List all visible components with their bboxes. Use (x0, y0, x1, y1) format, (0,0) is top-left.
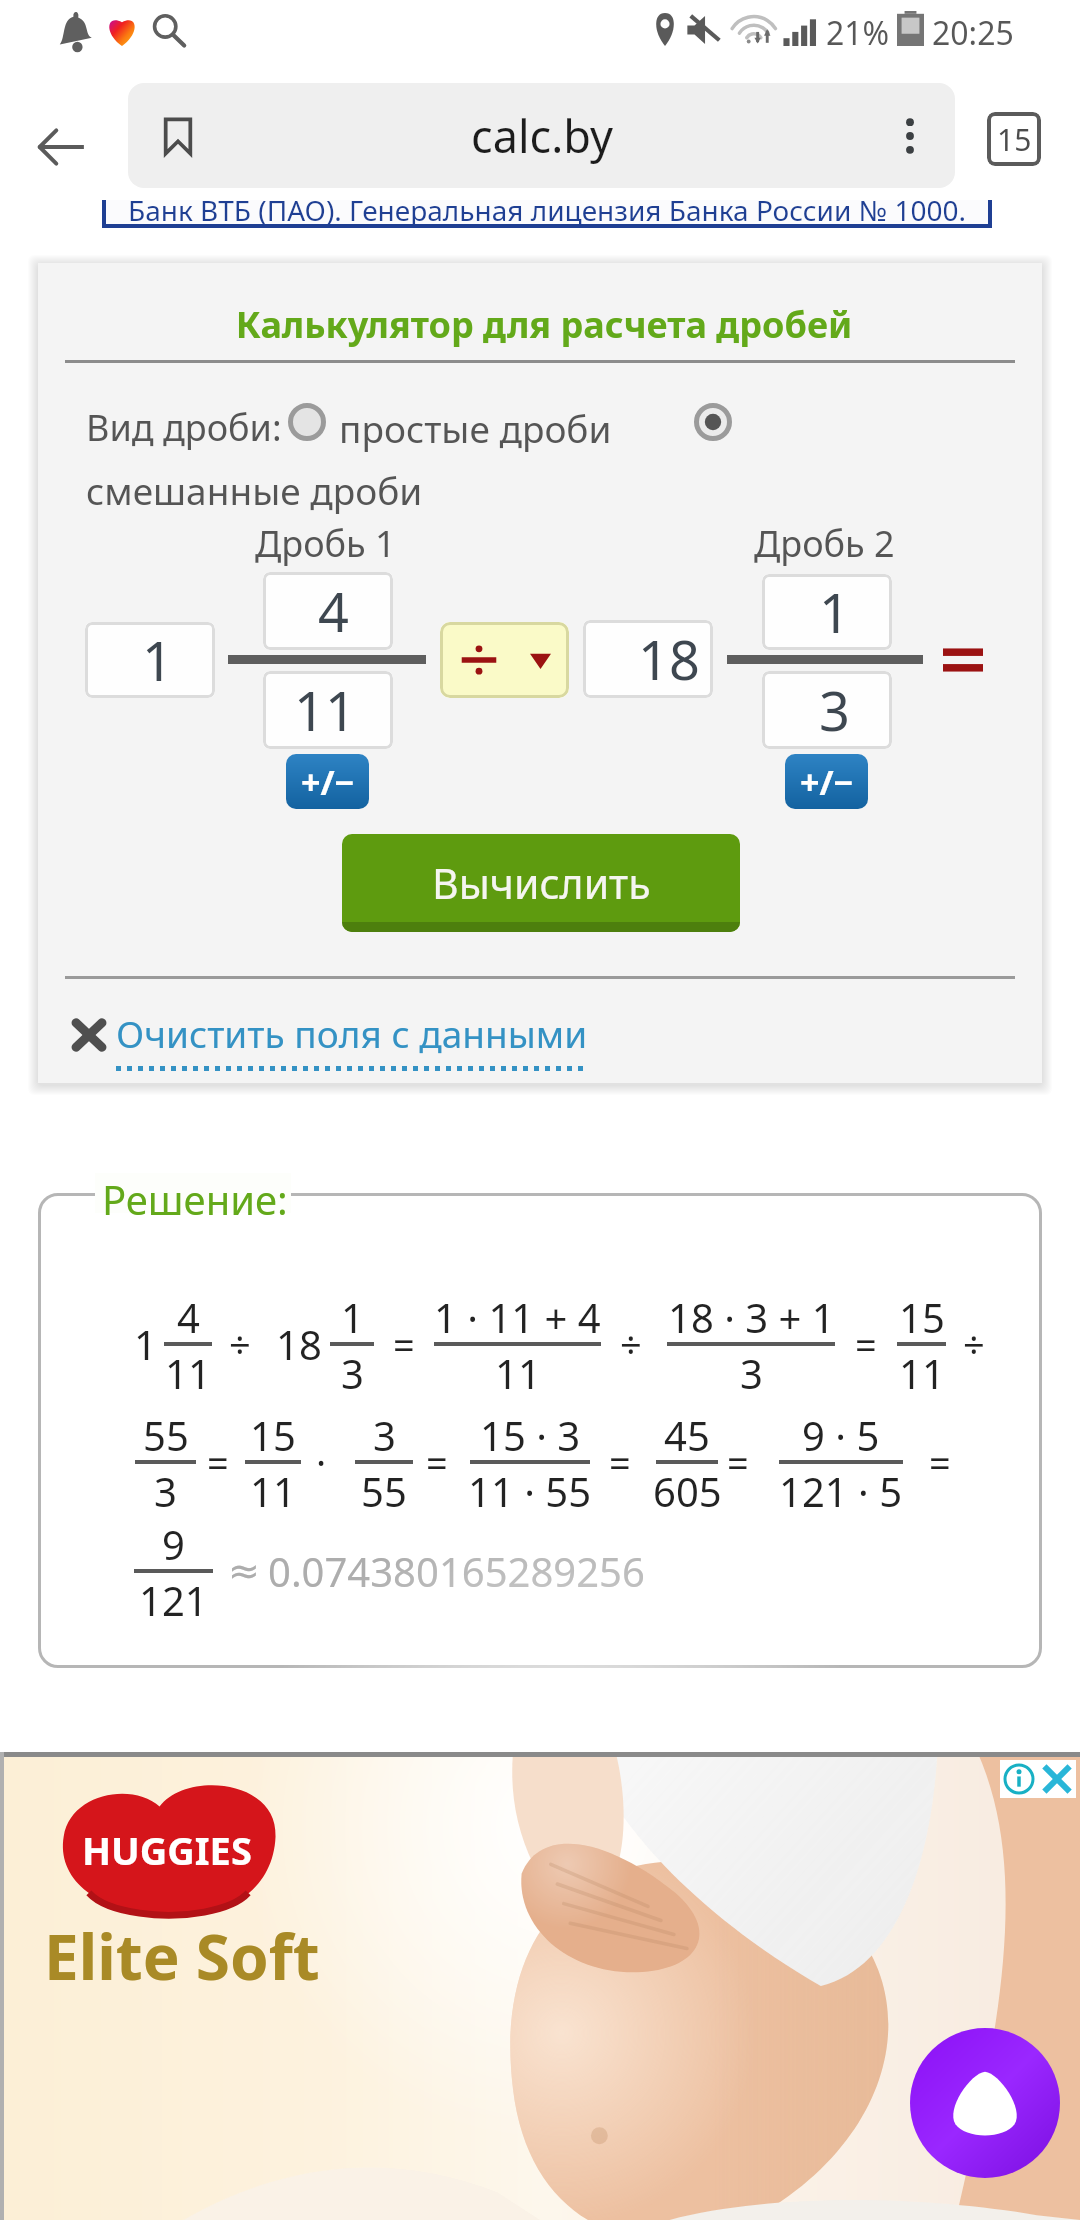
button[interactable]: 1 (762, 574, 892, 650)
staticText: = (426, 1436, 448, 1488)
staticText: 121 · 5 (779, 1464, 903, 1518)
staticText: 45 (664, 1408, 710, 1462)
staticText: 15 (899, 1290, 945, 1344)
staticText: Дробь 1 (255, 519, 396, 568)
button[interactable]: Assistant (910, 2028, 1060, 2178)
staticText: = (727, 1436, 749, 1488)
staticText: Решение: (102, 1172, 288, 1226)
staticText: 15 (997, 119, 1032, 160)
staticText: Вид дроби: (86, 403, 282, 452)
staticText: HUGGIES (82, 1824, 252, 1876)
button[interactable]: Tabs (983, 108, 1045, 170)
staticText: = (609, 1436, 631, 1488)
staticText: 4 (177, 1290, 200, 1344)
staticText: 0.074380165289256 (268, 1544, 645, 1598)
staticText: 3 (373, 1408, 396, 1462)
button[interactable]: Address bar (128, 83, 955, 188)
staticText: 605 (653, 1464, 722, 1518)
staticText: · (316, 1436, 327, 1488)
button[interactable]: Close ad (1038, 1760, 1076, 1798)
staticText: 11 (495, 1346, 541, 1400)
staticText: смешанные дроби (86, 465, 423, 515)
staticText: +/− (301, 759, 355, 805)
staticText: 18 (276, 1317, 322, 1371)
button[interactable]: Back (26, 112, 96, 182)
staticText: 1 (134, 1317, 157, 1371)
staticText: ≈ (228, 1549, 260, 1593)
button[interactable]: Huggies Elite Soft advertisement (0, 1752, 1080, 2220)
staticText: 11 · 55 (468, 1464, 592, 1518)
staticText: 9 (162, 1517, 185, 1571)
button[interactable]: 1 (85, 622, 215, 698)
button[interactable]: +/− (286, 754, 369, 809)
button[interactable]: 18 (583, 620, 713, 698)
staticText: 20:25 (932, 11, 1014, 55)
staticText: ÷ (963, 1318, 985, 1370)
staticText: 3 (341, 1346, 364, 1400)
staticText: = (207, 1436, 229, 1488)
staticText: 1 (142, 623, 173, 697)
staticText: 3 (740, 1346, 763, 1400)
button[interactable]: 11 (263, 671, 393, 749)
staticText: 15 (250, 1408, 296, 1462)
button[interactable]: Вычислить (342, 834, 740, 932)
button[interactable]: 4 (263, 572, 393, 650)
staticText: 121 (139, 1573, 208, 1627)
button[interactable]: Смешанные дроби (692, 401, 734, 443)
staticText: 3 (154, 1464, 177, 1518)
staticText: Дробь 2 (754, 519, 895, 568)
staticText: 9 · 5 (802, 1408, 880, 1462)
staticText: +/− (800, 759, 854, 805)
button[interactable]: Ad info (1000, 1760, 1038, 1798)
staticText: 55 (361, 1464, 407, 1518)
button[interactable]: Простые дроби (286, 401, 328, 443)
button[interactable]: More options (880, 106, 940, 166)
staticText: Вычислить (432, 855, 651, 911)
staticText: = (393, 1318, 415, 1370)
staticText: calc.by (471, 105, 613, 166)
staticText: 11 (899, 1346, 945, 1400)
staticText: 3 (819, 673, 850, 747)
button[interactable]: Очистить поля с данными (116, 1008, 586, 1076)
staticText: 21% (826, 11, 890, 55)
staticText: простые дроби (339, 403, 612, 453)
staticText: 55 (143, 1408, 189, 1462)
staticText: Очистить поля с данными (116, 1008, 588, 1058)
staticText: 15 · 3 (480, 1408, 581, 1462)
staticText: 18 (638, 622, 700, 696)
button[interactable]: Операция (440, 622, 569, 698)
staticText: 11 (294, 673, 356, 747)
button[interactable]: 3 (762, 671, 892, 749)
staticText: Банк ВТБ (ПАО). Генеральная лицензия Бан… (128, 200, 966, 229)
staticText: ÷ (620, 1318, 642, 1370)
staticText: ÷ (229, 1318, 251, 1370)
staticText: 1 · 11 + 4 (434, 1290, 601, 1344)
staticText: = (855, 1318, 877, 1370)
staticText: = (929, 1436, 951, 1488)
staticText: 11 (165, 1346, 211, 1400)
button[interactable]: +/− (785, 754, 868, 809)
staticText: 4 (318, 574, 349, 648)
staticText: 18 · 3 + 1 (668, 1290, 835, 1344)
staticText: Elite Soft (44, 1914, 320, 1998)
button[interactable]: Банк ВТБ реклама (102, 200, 992, 244)
staticText: Калькулятор для расчета дробей (42, 300, 1046, 349)
staticText: 1 (341, 1290, 364, 1344)
staticText: 11 (250, 1464, 296, 1518)
staticText: 1 (819, 575, 850, 649)
